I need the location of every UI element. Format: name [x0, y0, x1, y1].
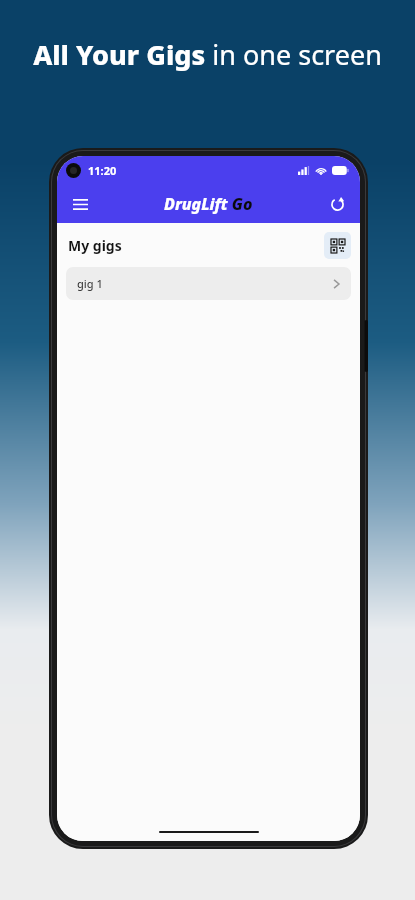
staticText: gig 1 — [77, 276, 103, 291]
button[interactable]: Refresh — [320, 187, 354, 221]
button[interactable]: Menu — [63, 187, 97, 221]
staticText: My gigs — [68, 236, 122, 255]
button[interactable]: Scan QR code — [324, 232, 351, 259]
button[interactable]: gig 1 — [66, 267, 351, 300]
staticText: DrugLift Go — [164, 193, 253, 215]
staticText: All Your Gigs in one screen — [20, 36, 395, 73]
staticText: 11:20 — [88, 163, 117, 178]
